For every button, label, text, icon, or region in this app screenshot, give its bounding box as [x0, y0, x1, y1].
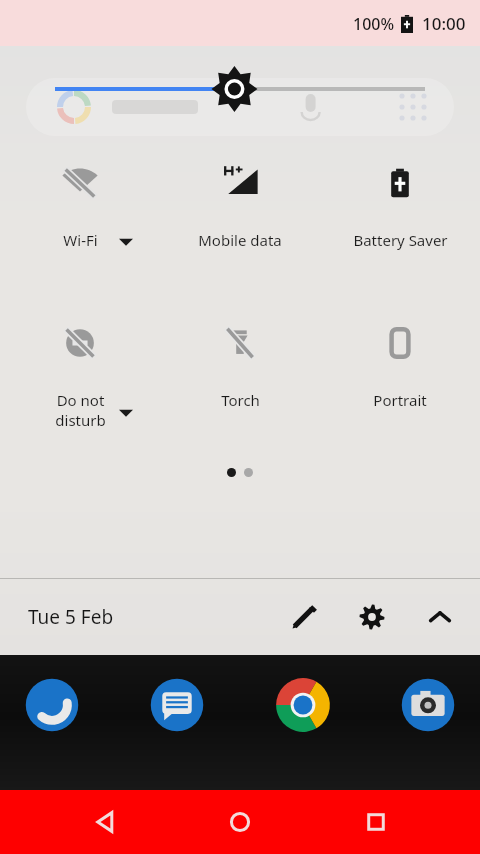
button[interactable]: Phone: [18, 671, 86, 739]
staticText: Battery Saver: [353, 230, 448, 250]
button[interactable]: Portrait: [320, 304, 480, 410]
staticText: Portrait: [373, 390, 427, 410]
button[interactable]: Settings: [350, 595, 394, 639]
staticText: Tue 5 Feb: [28, 604, 114, 630]
button[interactable]: Brightness: [0, 68, 480, 110]
button[interactable]: Recents: [344, 790, 408, 854]
button[interactable]: Battery Saver: [320, 144, 480, 250]
staticText: 10:00: [422, 12, 466, 35]
button[interactable]: Collapse: [418, 595, 462, 639]
button[interactable]: Wi-Fi: [0, 144, 160, 250]
button[interactable]: Torch: [160, 304, 320, 410]
staticText: Torch: [221, 390, 260, 410]
button[interactable]: Messages: [143, 671, 211, 739]
button[interactable]: Camera: [394, 671, 462, 739]
staticText: Wi-Fi: [63, 230, 98, 250]
button[interactable]: Do not disturb: [0, 304, 160, 430]
button[interactable]: Chrome: [269, 671, 337, 739]
button[interactable]: Home: [208, 790, 272, 854]
staticText: Mobile data: [198, 230, 282, 250]
button[interactable]: Edit: [282, 595, 326, 639]
staticText: Do not disturb: [55, 390, 106, 430]
button[interactable]: Back: [72, 790, 136, 854]
staticText: 100%: [353, 13, 395, 35]
button[interactable]: Mobile data: [160, 144, 320, 250]
